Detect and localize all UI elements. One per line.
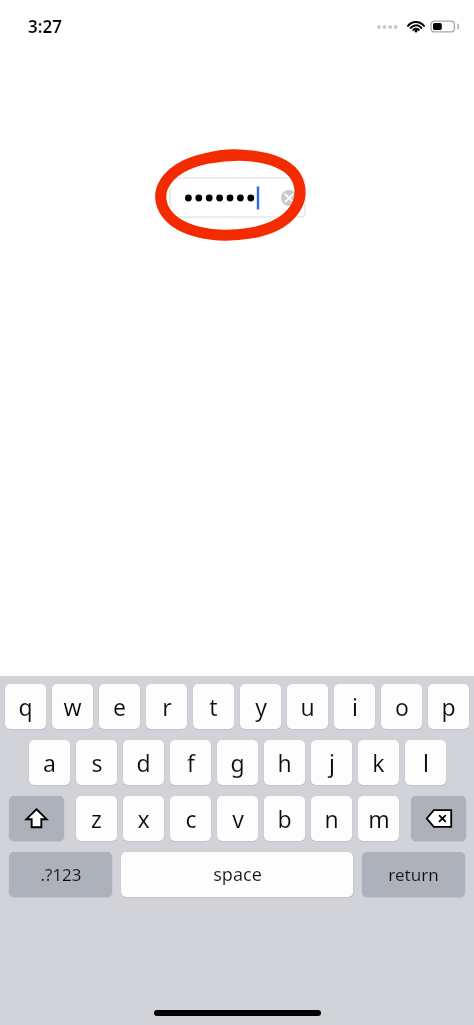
button[interactable]: return	[362, 852, 465, 897]
staticText: t	[209, 691, 218, 722]
button[interactable]: u	[287, 684, 328, 729]
button[interactable]: Shift	[9, 796, 64, 841]
staticText: n	[324, 803, 339, 834]
button[interactable]: b	[264, 796, 305, 841]
staticText: j	[329, 747, 335, 778]
button[interactable]: c	[170, 796, 211, 841]
button[interactable]: .?123	[9, 852, 112, 897]
staticText: m	[368, 803, 390, 834]
button[interactable]: o	[381, 684, 422, 729]
button[interactable]: Clear text	[279, 188, 299, 208]
button[interactable]: j	[311, 740, 352, 785]
staticText: r	[162, 691, 172, 722]
button[interactable]: space	[121, 852, 353, 897]
button[interactable]: i	[334, 684, 375, 729]
staticText: i	[352, 691, 358, 722]
button[interactable]: d	[123, 740, 164, 785]
staticText: w	[63, 691, 82, 722]
button[interactable]: r	[146, 684, 187, 729]
staticText: y	[255, 691, 267, 722]
button[interactable]: w	[52, 684, 93, 729]
button[interactable]: n	[311, 796, 352, 841]
button[interactable]: g	[217, 740, 258, 785]
staticText: p	[441, 691, 456, 722]
button[interactable]: p	[428, 684, 469, 729]
staticText: q	[18, 691, 33, 722]
staticText: f	[187, 747, 195, 778]
staticText: l	[423, 747, 429, 778]
button[interactable]: a	[29, 740, 70, 785]
button[interactable]: s	[76, 740, 117, 785]
button[interactable]: m	[358, 796, 399, 841]
button[interactable]: k	[358, 740, 399, 785]
staticText: .?123	[40, 863, 82, 886]
button[interactable]: q	[5, 684, 46, 729]
button[interactable]: y	[240, 684, 281, 729]
staticText: b	[277, 803, 292, 834]
staticText: v	[232, 803, 244, 834]
staticText: c	[185, 803, 197, 834]
staticText: k	[372, 747, 385, 778]
staticText: u	[300, 691, 315, 722]
staticText: z	[91, 803, 102, 834]
staticText: x	[137, 803, 150, 834]
staticText: e	[113, 691, 126, 722]
button[interactable]: l	[405, 740, 446, 785]
staticText: d	[136, 747, 151, 778]
staticText: g	[230, 747, 245, 778]
staticText: o	[395, 691, 409, 722]
staticText: return	[388, 863, 439, 886]
button[interactable]: z	[76, 796, 117, 841]
button[interactable]: h	[264, 740, 305, 785]
staticText: s	[91, 747, 103, 778]
button[interactable]: f	[170, 740, 211, 785]
staticText: 3:27	[28, 15, 62, 38]
button[interactable]: Clear text	[170, 178, 305, 217]
button[interactable]: e	[99, 684, 140, 729]
staticText: h	[277, 747, 292, 778]
staticText: a	[43, 747, 56, 778]
button[interactable]: t	[193, 684, 234, 729]
button[interactable]: Backspace	[411, 796, 466, 841]
button[interactable]: v	[217, 796, 258, 841]
staticText: space	[213, 862, 262, 887]
button[interactable]: x	[123, 796, 164, 841]
